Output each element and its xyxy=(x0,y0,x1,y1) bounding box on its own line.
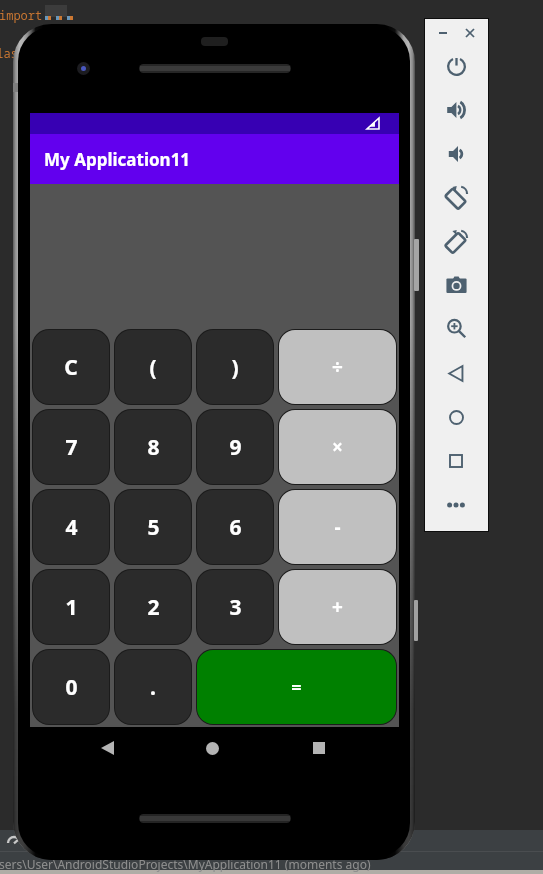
button[interactable]: Home xyxy=(440,401,472,433)
staticText: 4 xyxy=(65,513,78,542)
staticText: 2 xyxy=(147,593,160,622)
button[interactable]: More xyxy=(440,489,472,521)
button[interactable]: Close xyxy=(454,17,486,49)
button[interactable]: Rotate right xyxy=(440,225,472,257)
button[interactable]: 7 xyxy=(33,410,109,484)
button[interactable]: 2 xyxy=(115,570,191,644)
staticText: + xyxy=(332,594,343,620)
staticText: import xyxy=(0,7,43,23)
staticText: - xyxy=(334,514,341,540)
button[interactable]: 1 xyxy=(33,570,109,644)
button[interactable]: 6 xyxy=(197,490,273,564)
button[interactable]: Screenshot xyxy=(440,269,472,301)
staticText: ) xyxy=(231,353,239,382)
staticText: My Application11 xyxy=(44,148,191,171)
staticText: 0 xyxy=(65,673,78,702)
button[interactable]: Volume down xyxy=(440,138,472,170)
button[interactable]: × xyxy=(279,410,396,484)
button[interactable]: - xyxy=(279,490,396,564)
button[interactable]: . xyxy=(115,650,191,724)
button[interactable]: Power xyxy=(440,50,472,82)
staticText: × xyxy=(332,434,343,460)
button[interactable]: Zoom xyxy=(440,312,472,344)
staticText: . xyxy=(150,673,156,702)
button[interactable]: + xyxy=(279,570,396,644)
button[interactable]: Minimize xyxy=(427,17,459,49)
button[interactable]: ) xyxy=(197,330,273,404)
button[interactable]: 5 xyxy=(115,490,191,564)
staticText: 6 xyxy=(229,513,242,542)
button[interactable]: 0 xyxy=(33,650,109,724)
button[interactable]: ÷ xyxy=(279,330,396,404)
button[interactable]: ( xyxy=(115,330,191,404)
button[interactable]: Volume up xyxy=(440,94,472,126)
button[interactable]: Back xyxy=(85,727,129,769)
staticText: sers\User\AndroidStudioProjects\MyApplic… xyxy=(0,856,371,872)
staticText: 1 xyxy=(65,593,78,622)
staticText: 8 xyxy=(147,433,160,462)
button[interactable]: Recents xyxy=(297,727,341,769)
staticText: 7 xyxy=(65,433,78,462)
button[interactable]: Back xyxy=(440,357,472,389)
staticText: ÷ xyxy=(332,354,343,380)
button[interactable]: 8 xyxy=(115,410,191,484)
staticText: 9 xyxy=(229,433,242,462)
staticText: class xyxy=(0,45,26,61)
staticText: = xyxy=(291,675,302,700)
button[interactable]: 3 xyxy=(197,570,273,644)
button[interactable]: = xyxy=(197,650,396,724)
button[interactable]: Rotate left xyxy=(440,181,472,213)
button[interactable]: C xyxy=(33,330,109,404)
staticText: ( xyxy=(149,353,157,382)
button[interactable]: Home xyxy=(190,727,234,769)
button[interactable]: 4 xyxy=(33,490,109,564)
staticText: 3 xyxy=(229,593,242,622)
staticText: C xyxy=(64,353,78,382)
button[interactable]: Recents xyxy=(440,445,472,477)
staticText: 5 xyxy=(147,513,160,542)
button[interactable]: 9 xyxy=(197,410,273,484)
